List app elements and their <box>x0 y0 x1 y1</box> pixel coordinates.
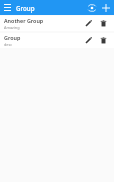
staticText: Group <box>16 4 35 12</box>
button[interactable]: Open navigation menu <box>2 2 13 13</box>
button[interactable]: Edit Another Group <box>82 17 95 30</box>
button[interactable]: Edit Group <box>82 34 95 47</box>
button[interactable]: Group <box>0 33 114 48</box>
button[interactable]: Toggle visibility <box>85 1 98 14</box>
button[interactable]: Delete Another Group <box>97 17 110 30</box>
staticText: desc <box>4 42 13 47</box>
button[interactable]: Another Group <box>0 16 114 31</box>
staticText: Group <box>4 34 21 41</box>
button[interactable]: Add group <box>99 1 112 14</box>
button[interactable]: Delete Group <box>97 34 110 47</box>
staticText: Another Group <box>4 17 44 24</box>
staticText: Amazing <box>4 25 20 30</box>
